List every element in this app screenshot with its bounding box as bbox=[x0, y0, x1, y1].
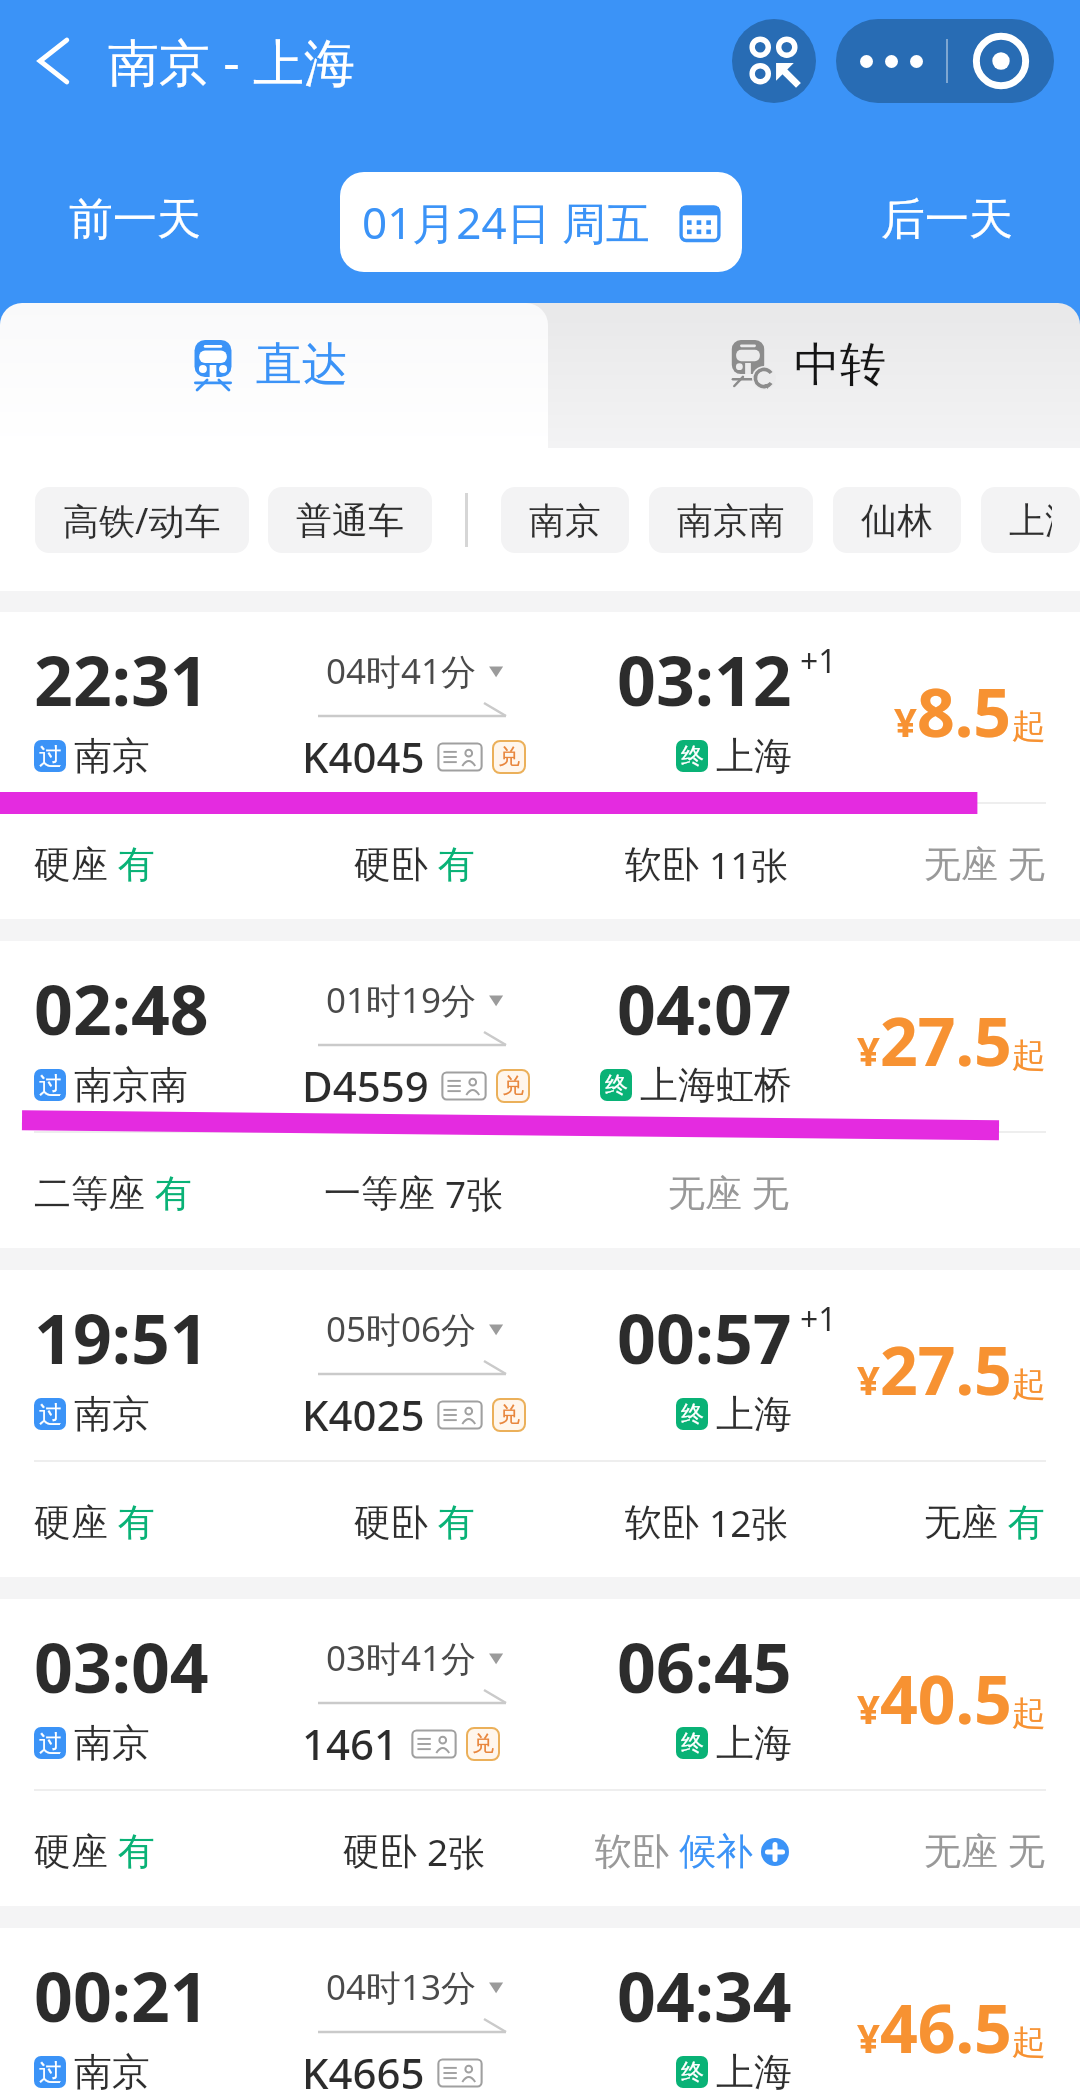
button[interactable]: 后一天 bbox=[852, 170, 1042, 268]
staticText: 04时13分 bbox=[326, 1963, 477, 2011]
staticText: 02:48 bbox=[34, 962, 209, 1055]
staticText: 有 bbox=[1008, 1499, 1045, 1546]
staticText: 终 bbox=[681, 1729, 704, 1758]
staticText: 22:31 bbox=[34, 633, 209, 726]
staticText: 终 bbox=[681, 742, 704, 771]
staticText: 南京 bbox=[74, 1719, 150, 1767]
staticText: ¥ bbox=[857, 1352, 880, 1406]
button[interactable]: 00:21 bbox=[0, 1928, 1080, 2091]
staticText: 硬卧 bbox=[354, 1499, 428, 1546]
staticText: 无座 bbox=[924, 841, 998, 888]
staticText: 终 bbox=[681, 2058, 704, 2087]
button[interactable]: 上海 bbox=[981, 487, 1080, 553]
button[interactable]: 南京 bbox=[501, 487, 629, 553]
staticText: 普通车 bbox=[296, 498, 404, 543]
button[interactable]: 02:48 bbox=[0, 941, 1080, 1248]
staticText: 01月24日 周五 bbox=[362, 192, 651, 252]
staticText: 过 bbox=[39, 1400, 62, 1429]
staticText: 硬座 bbox=[34, 1828, 108, 1875]
staticText: 起 bbox=[1012, 1034, 1046, 1077]
staticText: 03时41分 bbox=[326, 1634, 477, 1682]
staticText: 起 bbox=[1012, 1363, 1046, 1406]
staticText: 二等座 bbox=[34, 1170, 145, 1217]
staticText: 南京 - 上海 bbox=[108, 26, 355, 96]
staticText: 无座 bbox=[924, 1828, 998, 1875]
button[interactable]: 03:04 bbox=[0, 1599, 1080, 1906]
staticText: 03:04 bbox=[34, 1620, 209, 1713]
button[interactable]: 前一天 bbox=[40, 170, 230, 268]
button[interactable]: Back bbox=[0, 0, 108, 122]
staticText: 一等座 bbox=[324, 1170, 435, 1217]
staticText: 8.5 bbox=[917, 666, 1012, 756]
staticText: 兑 bbox=[498, 743, 520, 771]
staticText: 有 bbox=[438, 841, 475, 888]
staticText: 兑 bbox=[498, 1401, 520, 1429]
button[interactable]: Scan code bbox=[732, 19, 816, 103]
staticText: 过 bbox=[39, 1071, 62, 1100]
staticText: 软卧 bbox=[625, 1499, 699, 1546]
staticText: K4665 bbox=[302, 2044, 425, 2091]
staticText: 兑 bbox=[472, 1730, 494, 1758]
staticText: 01时19分 bbox=[326, 976, 477, 1024]
button[interactable]: 仙林 bbox=[833, 487, 961, 553]
staticText: 无 bbox=[752, 1170, 789, 1217]
staticText: 04时41分 bbox=[326, 647, 477, 695]
staticText: 46.5 bbox=[880, 1982, 1012, 2072]
staticText: 硬座 bbox=[34, 1499, 108, 1546]
staticText: 有 bbox=[118, 1499, 155, 1546]
staticText: 有 bbox=[118, 1828, 155, 1875]
button[interactable]: 直达 bbox=[0, 303, 548, 448]
button[interactable]: 南京南 bbox=[649, 487, 813, 553]
staticText: 南京 bbox=[74, 732, 150, 780]
staticText: 03:12 bbox=[617, 633, 792, 726]
staticText: 上海 bbox=[716, 732, 792, 780]
staticText: 有 bbox=[155, 1170, 192, 1217]
staticText: 上海 bbox=[716, 2048, 792, 2091]
staticText: 前一天 bbox=[69, 192, 201, 247]
staticText: 南京 bbox=[74, 2048, 150, 2091]
staticText: +1 bbox=[800, 639, 837, 683]
staticText: K4045 bbox=[302, 728, 425, 785]
button[interactable]: 01月24日 周五 bbox=[340, 172, 742, 272]
staticText: 27.5 bbox=[880, 995, 1012, 1085]
staticText: 7张 bbox=[445, 1168, 504, 1219]
button[interactable]: 19:51 bbox=[0, 1270, 1080, 1577]
button[interactable]: Live activity bbox=[948, 19, 1054, 103]
staticText: 12张 bbox=[709, 1497, 789, 1548]
staticText: 南京南 bbox=[677, 498, 785, 543]
staticText: ¥ bbox=[857, 1681, 880, 1735]
staticText: 无 bbox=[1008, 1828, 1045, 1875]
staticText: 上海虹桥 bbox=[640, 1061, 792, 1109]
staticText: ¥ bbox=[894, 694, 917, 748]
staticText: 11张 bbox=[709, 839, 789, 890]
staticText: ¥ bbox=[857, 2010, 880, 2064]
staticText: 硬卧 bbox=[343, 1828, 417, 1875]
staticText: 1461 bbox=[302, 1715, 399, 1772]
staticText: 南京 bbox=[74, 1390, 150, 1438]
staticText: 硬座 bbox=[34, 841, 108, 888]
staticText: 无座 bbox=[924, 1499, 998, 1546]
staticText: 终 bbox=[681, 1400, 704, 1429]
staticText: 起 bbox=[1012, 705, 1046, 748]
staticText: 兑 bbox=[502, 1072, 524, 1100]
button[interactable]: 22:31 bbox=[0, 612, 1080, 919]
staticText: 高铁/动车 bbox=[63, 496, 221, 545]
button[interactable]: 中转 bbox=[504, 303, 1080, 448]
staticText: 软卧 bbox=[625, 841, 699, 888]
staticText: 06:45 bbox=[617, 1620, 792, 1713]
button[interactable]: More options bbox=[836, 19, 946, 103]
staticText: 上海 bbox=[1009, 498, 1052, 543]
staticText: 00:21 bbox=[34, 1949, 209, 2042]
staticText: 有 bbox=[118, 841, 155, 888]
staticText: K4025 bbox=[302, 1386, 425, 1443]
staticText: ¥ bbox=[857, 1023, 880, 1077]
staticText: 上海 bbox=[716, 1719, 792, 1767]
button[interactable]: 高铁/动车 bbox=[35, 487, 249, 553]
staticText: 04:07 bbox=[617, 962, 792, 1055]
staticText: D4559 bbox=[302, 1057, 429, 1114]
button[interactable]: 普通车 bbox=[268, 487, 432, 553]
staticText: 软卧 bbox=[595, 1828, 669, 1875]
staticText: 终 bbox=[605, 1071, 628, 1100]
staticText: 00:57 bbox=[617, 1291, 792, 1384]
staticText: 南京南 bbox=[74, 1061, 188, 1109]
